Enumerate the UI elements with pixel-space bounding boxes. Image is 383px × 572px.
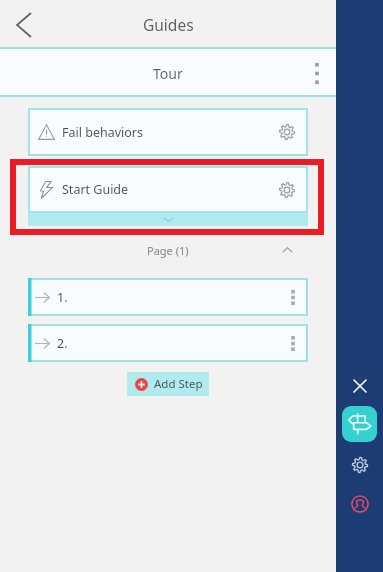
- button[interactable]: Settings: [344, 453, 375, 477]
- button[interactable]: Start Guide: [28, 166, 308, 213]
- button[interactable]: Step options: [281, 331, 305, 355]
- staticText: Add Step: [154, 376, 203, 392]
- button[interactable]: Fail behaviors: [28, 108, 308, 156]
- staticText: Guides: [143, 14, 194, 35]
- button[interactable]: Settings: [274, 119, 300, 145]
- staticText: Fail behaviors: [62, 124, 143, 141]
- button[interactable]: Account: [344, 491, 375, 516]
- button[interactable]: Close: [341, 367, 378, 404]
- button[interactable]: 1.: [28, 278, 308, 316]
- button[interactable]: Settings: [274, 177, 300, 203]
- staticText: Page (1): [147, 243, 189, 258]
- button[interactable]: Step options: [281, 285, 305, 309]
- staticText: 2.: [57, 335, 68, 352]
- button[interactable]: More options: [303, 57, 331, 89]
- button[interactable]: Collapse page: [275, 238, 299, 262]
- staticText: 1.: [57, 289, 68, 306]
- button[interactable]: Add Step: [127, 372, 209, 396]
- button[interactable]: Back: [2, 0, 48, 49]
- button[interactable]: Guides: [342, 406, 377, 442]
- staticText: Start Guide: [62, 181, 129, 198]
- staticText: Tour: [153, 64, 183, 83]
- button[interactable]: 2.: [28, 324, 308, 362]
